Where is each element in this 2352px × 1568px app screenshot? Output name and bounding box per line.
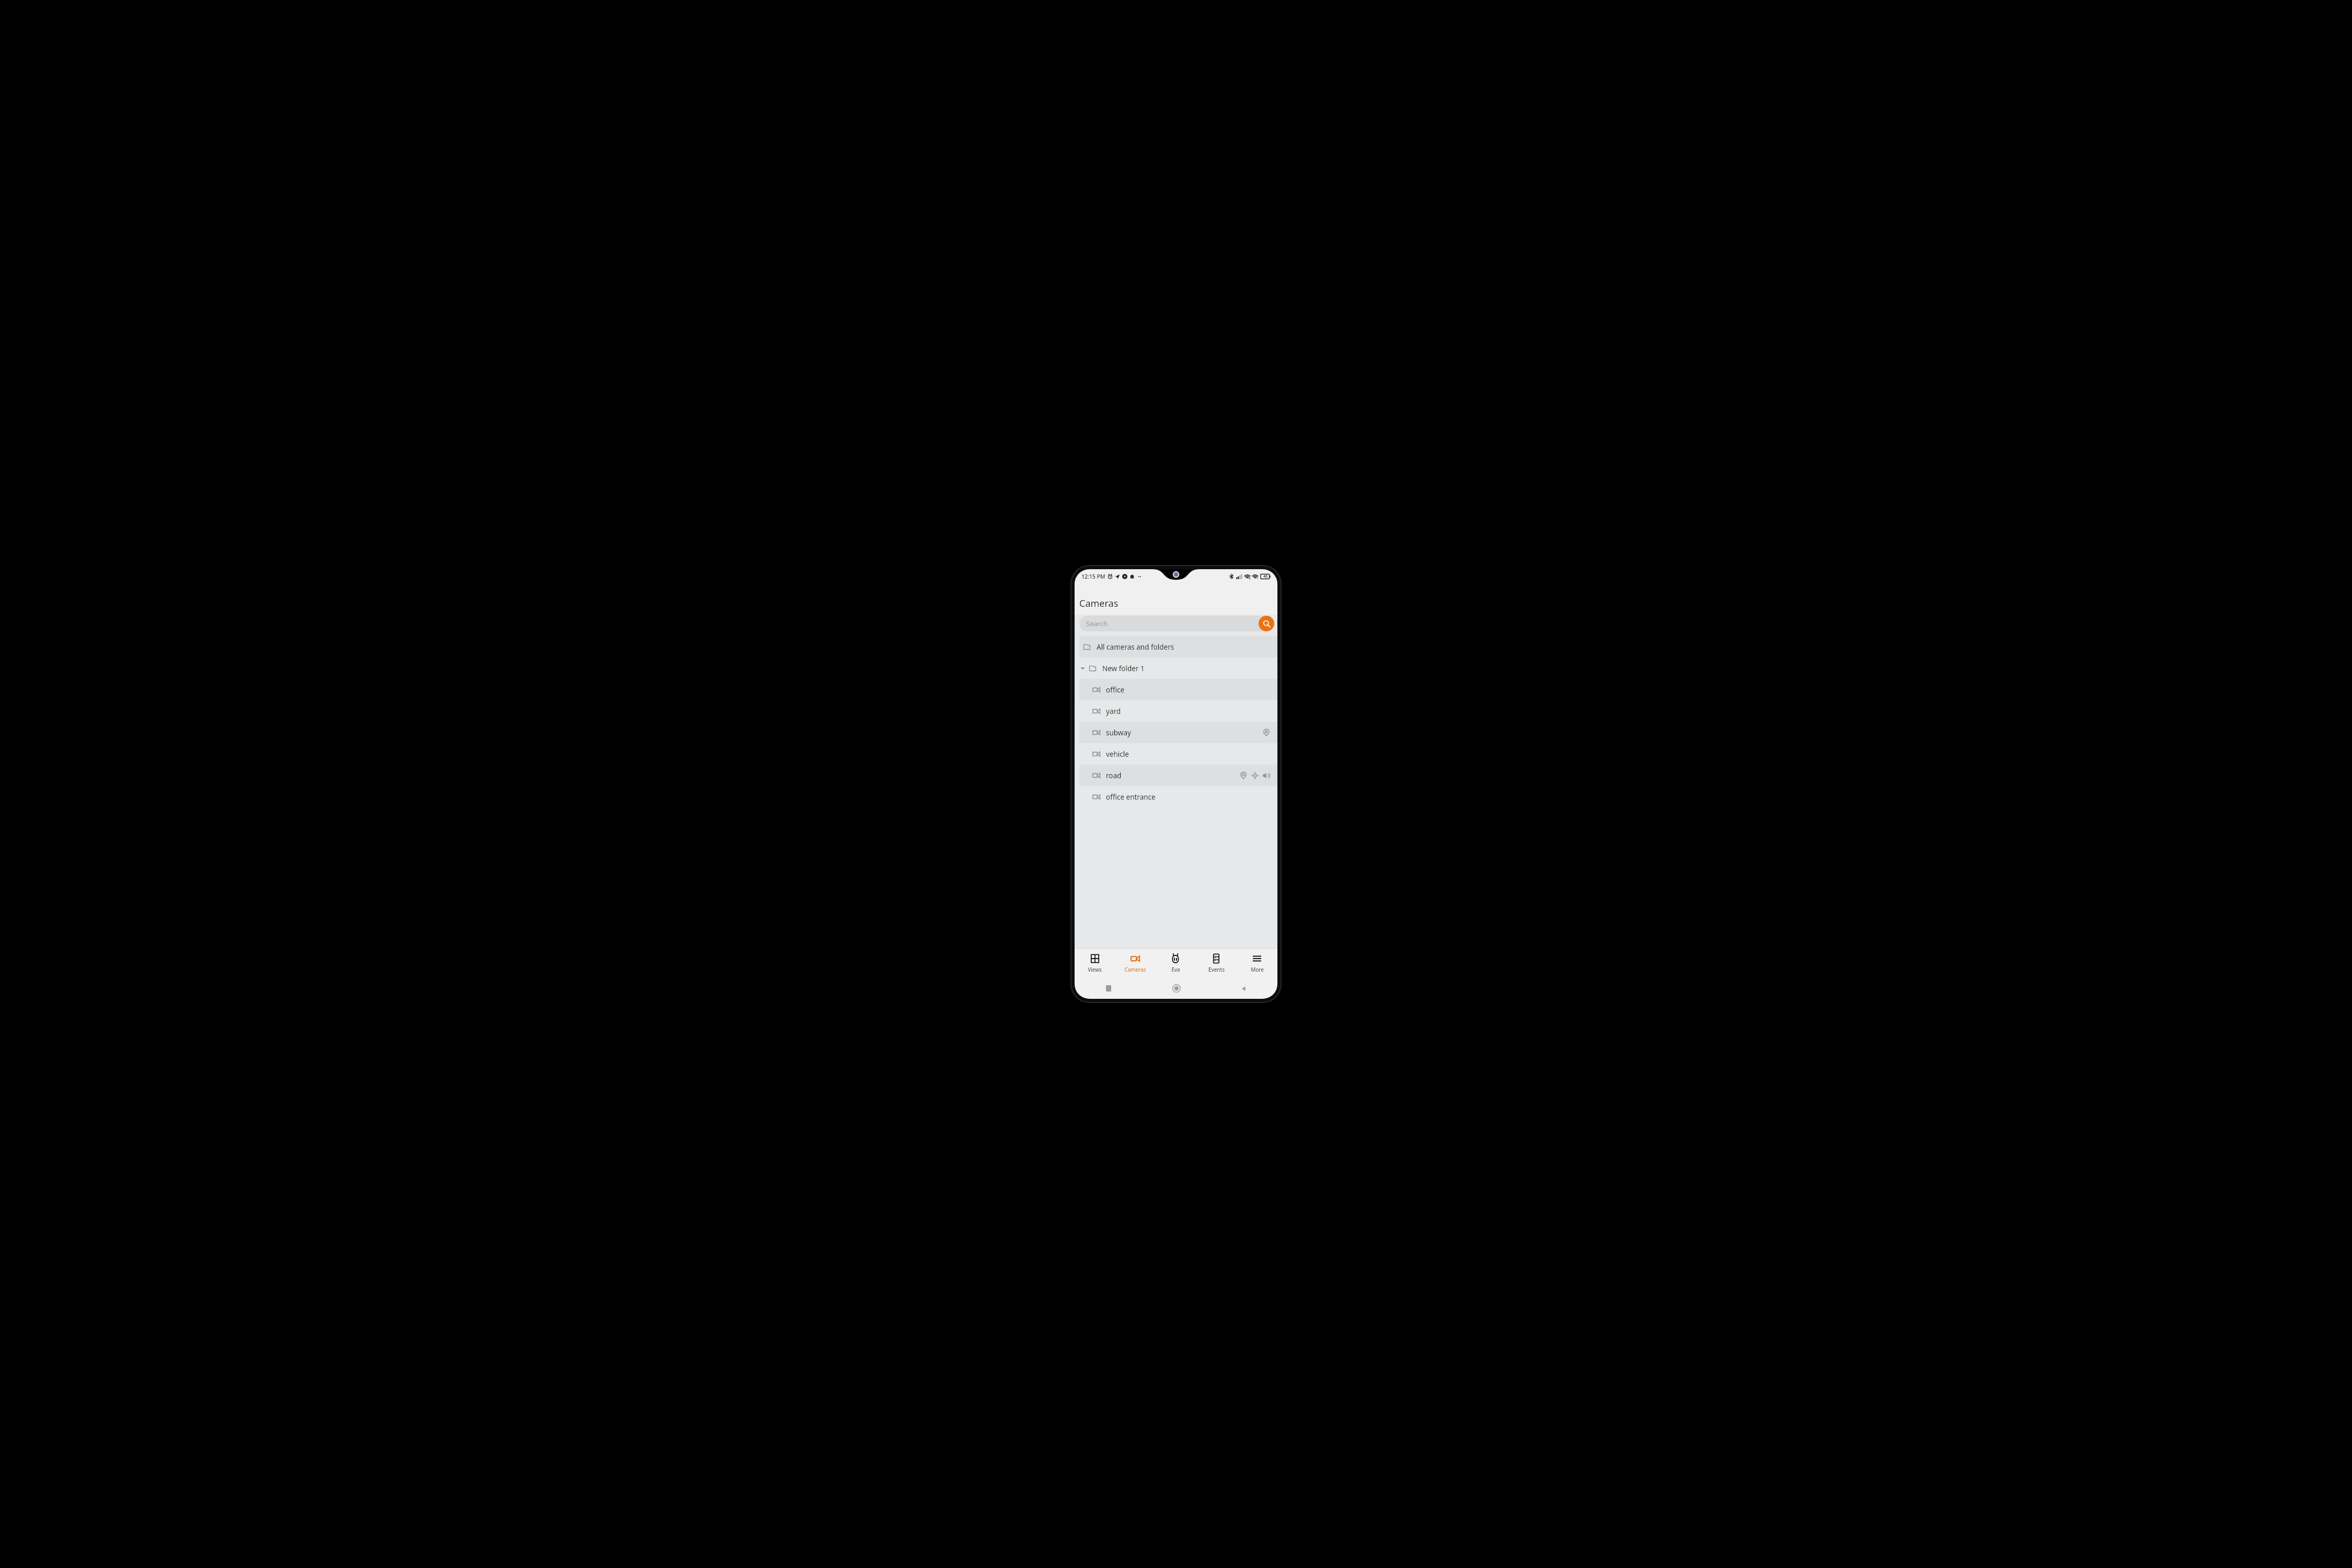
button[interactable]: Search [1079,616,1274,631]
button[interactable]: Events [1196,949,1237,978]
staticText: New folder 1 [1102,664,1145,673]
staticText: road [1106,771,1122,780]
staticText: Events [1208,966,1225,973]
button[interactable]: Back [1210,978,1277,999]
staticText: 12:15 PM [1081,573,1105,580]
staticText: office entrance [1106,792,1156,802]
button[interactable]: vehicle [1079,743,1277,765]
staticText: 46 [1263,574,1268,579]
button[interactable]: subway [1079,722,1277,743]
staticText: vehicle [1106,750,1129,759]
button[interactable]: Home [1143,978,1210,999]
staticText: office [1106,685,1125,695]
button[interactable]: road [1079,765,1277,786]
button[interactable]: New folder 1 [1079,658,1277,679]
staticText: All cameras and folders [1097,642,1174,652]
staticText: Eva [1171,966,1180,973]
button[interactable]: Search [1259,616,1274,631]
button[interactable]: office entrance [1079,786,1277,808]
button[interactable]: office [1079,679,1277,700]
staticText: subway [1106,728,1131,737]
staticText: More [1251,966,1264,973]
staticText: Views [1088,966,1102,973]
button[interactable]: Cameras [1115,949,1155,978]
button[interactable]: yard [1079,700,1277,722]
button[interactable]: Recent apps [1075,978,1143,999]
staticText: Cameras [1124,966,1146,973]
staticText: Search [1086,619,1108,628]
button[interactable]: Views [1075,949,1115,978]
button[interactable]: More [1237,949,1277,978]
button[interactable]: All cameras and folders [1079,636,1277,658]
staticText: Cameras [1079,597,1119,610]
staticText: yard [1106,707,1121,716]
button[interactable]: Eva [1155,949,1196,978]
